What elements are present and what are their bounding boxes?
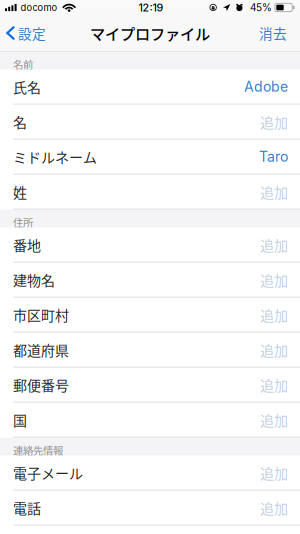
staticText: 45%	[250, 1, 272, 14]
staticText: マイプロファイル	[90, 22, 210, 44]
button[interactable]: 建物名	[0, 263, 300, 298]
button[interactable]: 姓	[0, 175, 300, 210]
staticText: 電話	[13, 498, 41, 518]
staticText: 市区町村	[13, 305, 69, 325]
staticText: 姓	[13, 182, 27, 202]
staticText: 消去	[259, 23, 287, 43]
staticText: 電子メール	[13, 463, 83, 483]
button[interactable]: 都道府県	[0, 333, 300, 368]
button[interactable]: 氏名	[0, 70, 300, 105]
staticText: 住所	[13, 215, 33, 230]
staticText: 追加	[260, 463, 288, 483]
button[interactable]: 名	[0, 105, 300, 140]
staticText: docomo	[20, 2, 57, 13]
staticText: 12:19	[138, 1, 163, 14]
staticText: 建物名	[13, 270, 55, 290]
button[interactable]: 設定	[0, 16, 54, 50]
button[interactable]: 郵便番号	[0, 368, 300, 403]
staticText: 国	[13, 410, 27, 430]
staticText: 都道府県	[13, 340, 69, 360]
button[interactable]: 消去	[249, 16, 300, 50]
staticText: ミドルネーム	[13, 147, 97, 167]
button[interactable]: 電子メール	[0, 456, 300, 491]
staticText: 追加	[260, 112, 288, 132]
staticText: 追加	[260, 270, 288, 290]
staticText: 名前	[13, 57, 33, 72]
button[interactable]: 国	[0, 403, 300, 438]
staticText: 追加	[260, 498, 288, 518]
button[interactable]: 市区町村	[0, 298, 300, 333]
staticText: 郵便番号	[13, 375, 69, 395]
staticText: 追加	[260, 375, 288, 395]
staticText: 追加	[260, 182, 288, 202]
staticText: 名	[13, 112, 27, 132]
staticText: 追加	[260, 340, 288, 360]
staticText: 設定	[18, 23, 46, 43]
staticText: 番地	[13, 235, 41, 255]
staticText: Taro	[259, 148, 288, 165]
staticText: 追加	[260, 410, 288, 430]
staticText: 追加	[260, 235, 288, 255]
staticText: 氏名	[13, 77, 41, 97]
staticText: 連絡先情報	[13, 443, 63, 458]
button[interactable]: 番地	[0, 228, 300, 263]
staticText: Adobe	[244, 78, 288, 95]
button[interactable]: 電話	[0, 491, 300, 526]
staticText: 追加	[260, 305, 288, 325]
button[interactable]: ミドルネーム	[0, 140, 300, 175]
